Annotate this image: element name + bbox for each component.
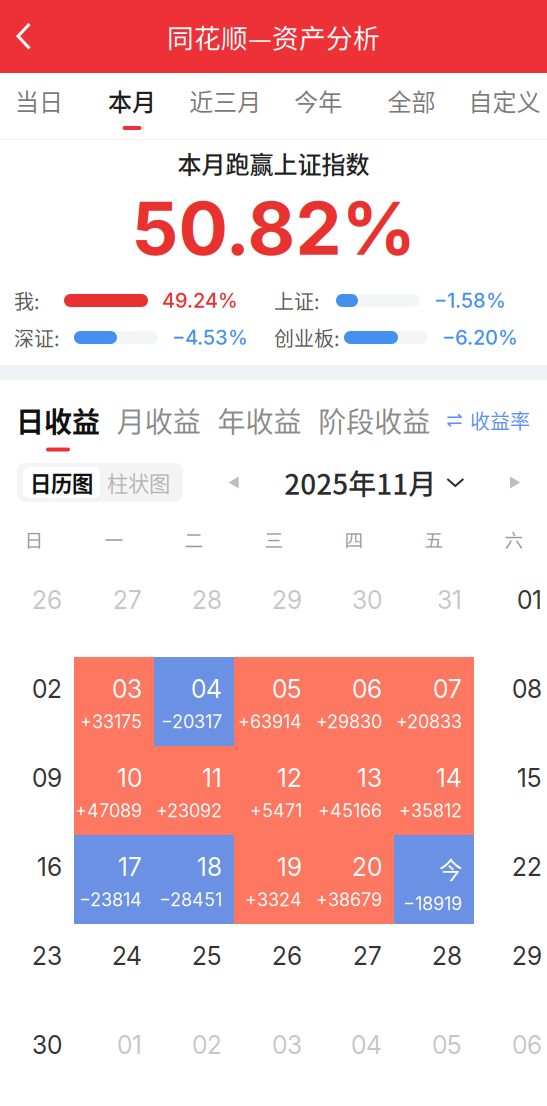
staticText: 04 (351, 1030, 382, 1060)
button[interactable]: 24 (74, 924, 154, 1013)
staticText: 01 (117, 1030, 142, 1060)
staticText: −1.58% (434, 288, 506, 313)
button[interactable]: 05 (234, 657, 314, 746)
button[interactable]: 22 (474, 835, 547, 924)
staticText: +5471 (250, 800, 302, 822)
staticText: 2025年11月 (284, 462, 436, 503)
staticText: 27 (353, 941, 382, 971)
staticText: 本月 (108, 83, 156, 118)
staticText: 30 (32, 1030, 62, 1060)
button[interactable]: 09 (0, 746, 74, 835)
button[interactable]: 今年 (272, 73, 365, 139)
button[interactable]: 30 (0, 1013, 74, 1102)
button[interactable]: 29 (474, 924, 547, 1013)
button[interactable]: 月收益 (117, 400, 201, 451)
button[interactable]: 03 (234, 1013, 314, 1102)
button[interactable]: 自定义 (458, 73, 547, 139)
button[interactable]: 26 (234, 924, 314, 1013)
staticText: −28451 (159, 889, 222, 911)
button[interactable]: 全部 (365, 73, 458, 139)
staticText: 04 (191, 674, 222, 704)
button[interactable]: 04 (314, 1013, 394, 1102)
button[interactable]: 15 (474, 746, 547, 835)
staticText: 12 (277, 763, 302, 793)
staticText: 阶段收益 (318, 400, 430, 440)
button[interactable]: 03 (74, 657, 154, 746)
button[interactable]: 12 (234, 746, 314, 835)
button[interactable]: 日历图 (23, 467, 100, 498)
button[interactable]: 18 (154, 835, 234, 924)
button[interactable]: 日收益 (16, 400, 100, 451)
button[interactable]: 14 (394, 746, 474, 835)
staticText: 一 (104, 525, 123, 552)
staticText: 23 (32, 941, 62, 971)
staticText: 自定义 (469, 83, 541, 118)
button[interactable]: 23 (0, 924, 74, 1013)
button[interactable]: 31 (394, 568, 474, 657)
staticText: 深证: (14, 323, 60, 352)
button[interactable]: 06 (474, 1013, 547, 1102)
staticText: 28 (432, 941, 462, 971)
button[interactable]: 30 (314, 568, 394, 657)
staticText: 近三月 (189, 83, 261, 118)
button[interactable]: 当日 (0, 73, 85, 139)
button[interactable]: 04 (154, 657, 234, 746)
staticText: 三 (264, 525, 283, 552)
button[interactable]: 02 (154, 1013, 234, 1102)
button[interactable]: 阶段收益 (318, 400, 430, 451)
button[interactable]: 本月 (85, 73, 179, 139)
staticText: 17 (118, 852, 142, 882)
button[interactable]: 柱状图 (100, 467, 177, 498)
button[interactable]: 01 (74, 1013, 154, 1102)
staticText: 本月跑赢上证指数 (177, 146, 369, 180)
staticText: 二 (184, 525, 203, 552)
button[interactable]: 下一月 (497, 464, 533, 500)
button[interactable]: 16 (0, 835, 74, 924)
button[interactable]: 27 (314, 924, 394, 1013)
button[interactable]: 今 (394, 835, 474, 924)
staticText: 49.24% (162, 288, 238, 313)
button[interactable]: 19 (234, 835, 314, 924)
staticText: 年收益 (217, 400, 301, 440)
button[interactable]: 25 (154, 924, 234, 1013)
staticText: 四 (344, 525, 363, 552)
button[interactable]: 27 (74, 568, 154, 657)
staticText: +23092 (156, 800, 222, 822)
button[interactable]: 26 (0, 568, 74, 657)
button[interactable]: 06 (314, 657, 394, 746)
staticText: 26 (32, 585, 62, 615)
staticText: 06 (352, 674, 382, 704)
button[interactable]: 05 (394, 1013, 474, 1102)
staticText: 50.82% (131, 184, 415, 272)
staticText: +33175 (80, 711, 142, 733)
button[interactable]: 02 (0, 657, 74, 746)
button[interactable]: 28 (394, 924, 474, 1013)
button[interactable]: 10 (74, 746, 154, 835)
staticText: 月收益 (117, 400, 201, 440)
button[interactable]: 29 (234, 568, 314, 657)
button[interactable]: 20 (314, 835, 394, 924)
staticText: 28 (192, 585, 222, 615)
staticText: 27 (113, 585, 142, 615)
staticText: −4.53% (172, 325, 248, 350)
button[interactable]: 28 (154, 568, 234, 657)
button[interactable]: 收益率 (447, 406, 530, 446)
button[interactable]: 08 (474, 657, 547, 746)
staticText: 13 (357, 763, 382, 793)
button[interactable]: 返回 (0, 0, 47, 73)
button[interactable]: 上一月 (216, 464, 252, 500)
staticText: 02 (32, 674, 62, 704)
button[interactable]: 2025年11月 (284, 464, 464, 500)
button[interactable]: 17 (74, 835, 154, 924)
button[interactable]: 13 (314, 746, 394, 835)
button[interactable]: 01 (474, 568, 547, 657)
staticText: 07 (433, 674, 462, 704)
staticText: 全部 (387, 83, 435, 118)
staticText: 03 (112, 674, 142, 704)
button[interactable]: 11 (154, 746, 234, 835)
staticText: +47089 (75, 800, 142, 822)
button[interactable]: 07 (394, 657, 474, 746)
button[interactable]: 近三月 (179, 73, 272, 139)
button[interactable]: 年收益 (217, 400, 301, 451)
staticText: 六 (504, 525, 523, 552)
